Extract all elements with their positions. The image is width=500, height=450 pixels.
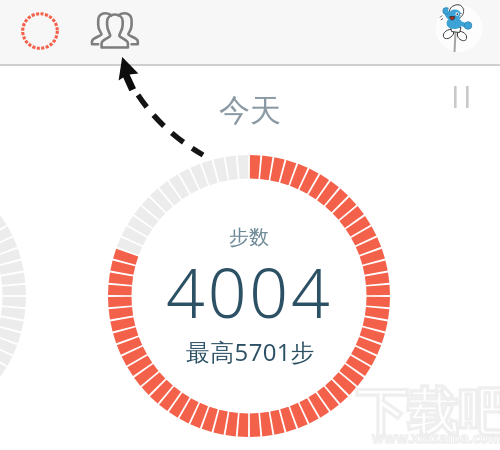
staticText: 4004 — [166, 245, 333, 338]
button[interactable]: Steps — [19, 10, 61, 52]
staticText: www.xiazaiba.com — [372, 428, 500, 447]
staticText: 今天 — [219, 91, 281, 130]
staticText: 下载吧 — [356, 381, 500, 445]
staticText: 最高5701步 — [186, 335, 316, 368]
staticText: 步数 — [229, 225, 269, 250]
button[interactable]: Profile — [437, 4, 489, 56]
button[interactable]: Friends — [90, 9, 138, 57]
button[interactable]: Pause — [442, 78, 478, 114]
